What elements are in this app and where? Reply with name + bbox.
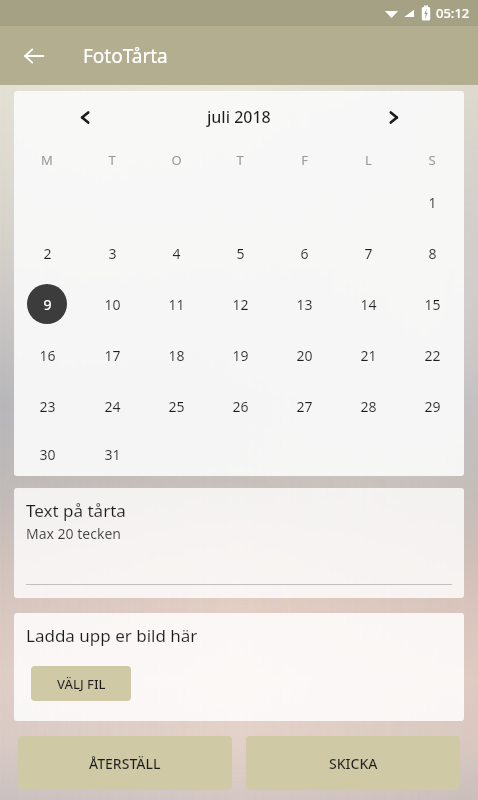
button[interactable]: 17 — [92, 335, 132, 375]
staticText: T — [236, 151, 244, 169]
staticText: 23 — [39, 397, 56, 416]
staticText: 5 — [236, 244, 245, 263]
staticText: SKICKA — [329, 754, 378, 773]
staticText: 20 — [296, 346, 313, 365]
button[interactable]: 18 — [156, 335, 196, 375]
staticText: 2 — [43, 244, 52, 263]
button[interactable]: 15 — [412, 284, 452, 324]
button[interactable]: 23 — [27, 386, 67, 426]
staticText: 31 — [104, 445, 121, 464]
staticText: 11 — [168, 295, 185, 314]
staticText: 17 — [104, 346, 121, 365]
button[interactable]: 29 — [412, 386, 452, 426]
staticText: 10 — [104, 295, 121, 314]
staticText: 28 — [360, 397, 377, 416]
staticText: VÄLJ FIL — [57, 675, 106, 693]
button[interactable]: 10 — [92, 284, 132, 324]
button[interactable]: 31 — [92, 434, 132, 474]
button[interactable]: 28 — [348, 386, 388, 426]
staticText: 15 — [424, 295, 441, 314]
staticText: 8 — [428, 244, 437, 263]
staticText: 19 — [232, 346, 249, 365]
button[interactable]: 24 — [92, 386, 132, 426]
staticText: 26 — [232, 397, 249, 416]
button[interactable]: Next month — [376, 100, 410, 134]
button[interactable]: 8 — [412, 233, 452, 273]
button[interactable]: 26 — [220, 386, 260, 426]
button[interactable]: 6 — [284, 233, 324, 273]
button[interactable]: 20 — [284, 335, 324, 375]
staticText: S — [428, 151, 436, 169]
button[interactable]: 13 — [284, 284, 324, 324]
staticText: F — [301, 151, 308, 169]
staticText: 3 — [108, 244, 117, 263]
button[interactable]: 14 — [348, 284, 388, 324]
button[interactable]: 21 — [348, 335, 388, 375]
staticText: M — [41, 151, 53, 169]
staticText: 21 — [360, 346, 377, 365]
staticText: juli 2018 — [207, 106, 271, 128]
button[interactable]: 7 — [348, 233, 388, 273]
staticText: L — [365, 151, 372, 169]
staticText: 16 — [39, 346, 56, 365]
button[interactable]: 2 — [27, 233, 67, 273]
button[interactable]: 19 — [220, 335, 260, 375]
button[interactable]: 27 — [284, 386, 324, 426]
staticText: 13 — [296, 295, 313, 314]
staticText: FotoTårta — [83, 43, 168, 69]
button[interactable]: Previous month — [68, 100, 102, 134]
button[interactable]: 16 — [27, 335, 67, 375]
staticText: 25 — [168, 397, 185, 416]
button[interactable]: 9 — [27, 284, 67, 324]
button[interactable]: 1 — [412, 182, 452, 222]
staticText: 29 — [424, 397, 441, 416]
button[interactable]: VÄLJ FIL — [31, 666, 131, 701]
staticText: 05:12 — [436, 4, 470, 22]
button[interactable]: SKICKA — [246, 736, 460, 790]
staticText: 6 — [300, 244, 309, 263]
staticText: ÅTERSTÄLL — [89, 754, 161, 773]
staticText: 1 — [428, 193, 437, 212]
button[interactable]: 3 — [92, 233, 132, 273]
button[interactable]: 11 — [156, 284, 196, 324]
button[interactable]: Back — [14, 36, 54, 76]
staticText: Ladda upp er bild här — [26, 624, 198, 647]
button[interactable]: 5 — [220, 233, 260, 273]
button[interactable]: 12 — [220, 284, 260, 324]
staticText: 22 — [424, 346, 441, 365]
staticText: 12 — [232, 295, 249, 314]
button[interactable]: 25 — [156, 386, 196, 426]
staticText: 9 — [43, 295, 52, 314]
staticText: 18 — [168, 346, 185, 365]
button[interactable]: 4 — [156, 233, 196, 273]
staticText: 14 — [360, 295, 377, 314]
staticText: T — [108, 151, 116, 169]
button[interactable]: 30 — [27, 434, 67, 474]
staticText: Text på tårta — [26, 499, 126, 522]
staticText: 4 — [172, 244, 181, 263]
staticText: 30 — [39, 445, 56, 464]
staticText: 7 — [364, 244, 373, 263]
staticText: Max 20 tecken — [26, 524, 121, 543]
button[interactable]: ÅTERSTÄLL — [18, 736, 232, 790]
staticText: 27 — [296, 397, 313, 416]
button[interactable]: Text på tårta — [14, 488, 464, 598]
button[interactable]: 22 — [412, 335, 452, 375]
staticText: O — [171, 151, 182, 169]
staticText: 24 — [104, 397, 121, 416]
